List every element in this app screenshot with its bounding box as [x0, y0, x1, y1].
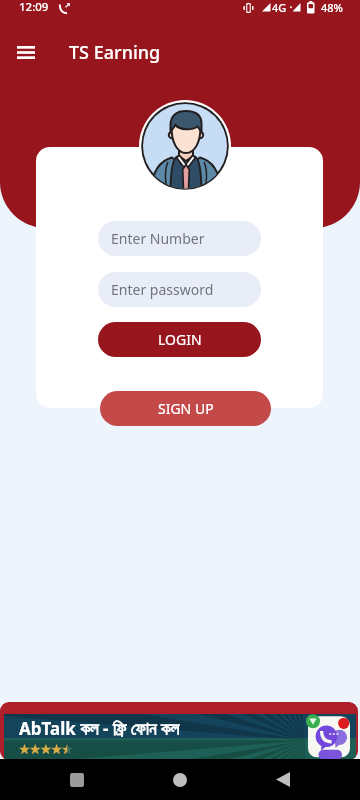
button[interactable]: AbTalk কল - ফ্রি ফোন কল — [0, 702, 358, 760]
staticText: Enter password — [111, 280, 214, 299]
staticText: AbTalk কল - ফ্রি ফোন কল — [19, 717, 179, 740]
button[interactable]: Menu — [8, 34, 44, 70]
staticText: 4G — [272, 0, 287, 15]
staticText: 48% — [321, 0, 343, 15]
staticText: Enter Number — [111, 229, 205, 248]
button[interactable]: LOGIN — [98, 322, 261, 357]
staticText: 12:09 — [19, 0, 49, 15]
staticText: LOGIN — [158, 330, 202, 349]
button[interactable]: SIGN UP — [100, 391, 271, 426]
button[interactable]: Home — [146, 759, 214, 800]
button[interactable]: Enter Number — [98, 221, 261, 256]
button[interactable]: Recents — [43, 759, 111, 800]
staticText: TS Earning — [69, 40, 161, 65]
button[interactable]: Enter password — [98, 272, 261, 307]
staticText: SIGN UP — [158, 399, 214, 418]
button[interactable]: Back — [249, 759, 317, 800]
